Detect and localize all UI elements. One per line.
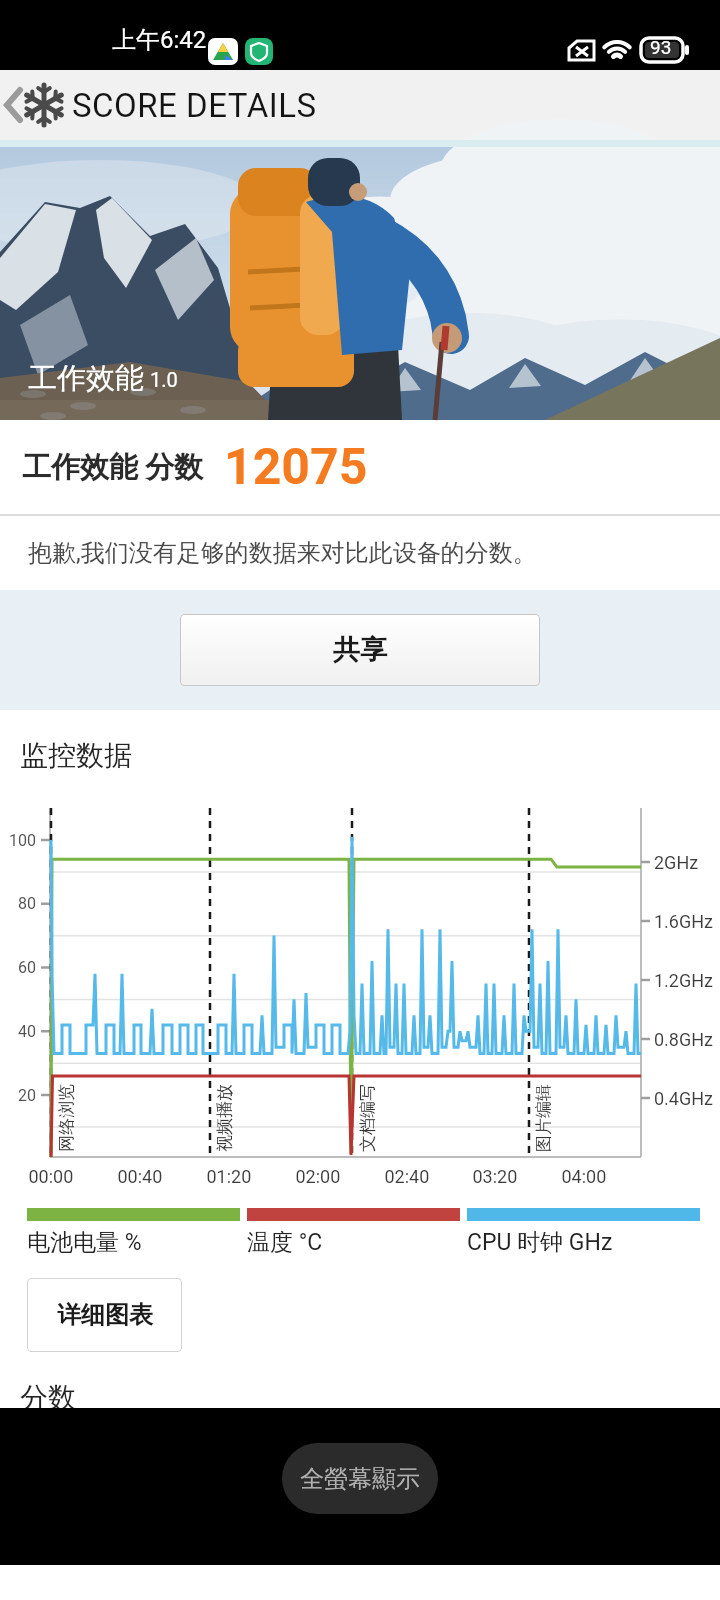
staticText: 抱歉,我们没有足够的数据来对比此设备的分数。	[28, 538, 537, 568]
button[interactable]: 共享	[180, 614, 540, 686]
staticText: SCORE DETAILS	[72, 86, 317, 125]
staticText: 12075	[224, 438, 368, 497]
button[interactable]: SCORE DETAILS	[0, 70, 720, 140]
staticText: 93	[650, 36, 672, 58]
staticText: 上午6:42	[112, 25, 207, 55]
button[interactable]: 全螢幕顯示	[282, 1443, 438, 1514]
staticText: 全螢幕顯示	[300, 1464, 420, 1494]
button[interactable]: 详细图表	[27, 1278, 182, 1352]
staticText: 电池电量 %	[27, 1228, 142, 1257]
button[interactable]	[0, 800, 720, 1190]
staticText: 1.0	[150, 368, 178, 391]
staticText: 温度 °C	[247, 1228, 323, 1257]
staticText: 详细图表	[57, 1300, 153, 1330]
staticText: 共享	[333, 633, 387, 667]
staticText: 监控数据	[20, 738, 132, 773]
staticText: 工作效能 分数	[22, 449, 204, 486]
staticText: 分数	[20, 1380, 76, 1408]
staticText: CPU 时钟 GHz	[467, 1228, 613, 1257]
button[interactable]: 工作效能	[0, 140, 720, 420]
staticText: 工作效能	[28, 360, 144, 397]
